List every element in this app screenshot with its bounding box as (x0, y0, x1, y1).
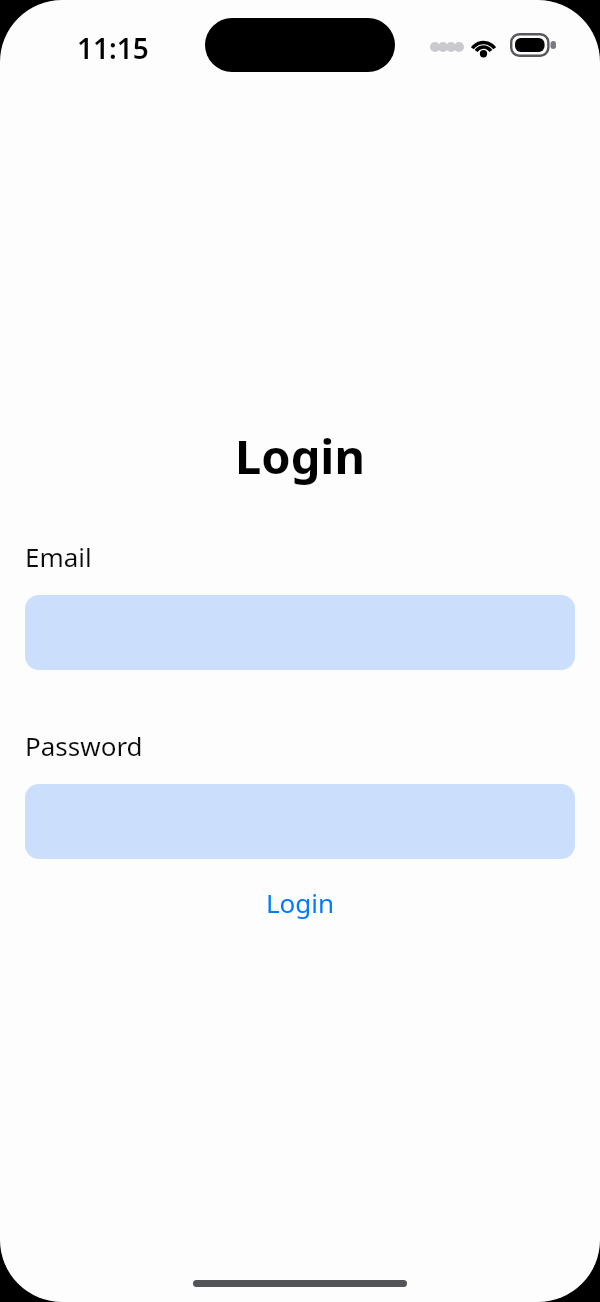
staticText: Email (25, 539, 92, 574)
staticText: Password (25, 728, 143, 763)
button[interactable]: Login (248, 879, 353, 926)
staticText: 11:15 (77, 29, 149, 67)
button[interactable]: Password input field (25, 784, 575, 859)
staticText: Login (266, 885, 335, 920)
staticText: Login (0, 424, 600, 488)
button[interactable]: Email input field (25, 595, 575, 670)
